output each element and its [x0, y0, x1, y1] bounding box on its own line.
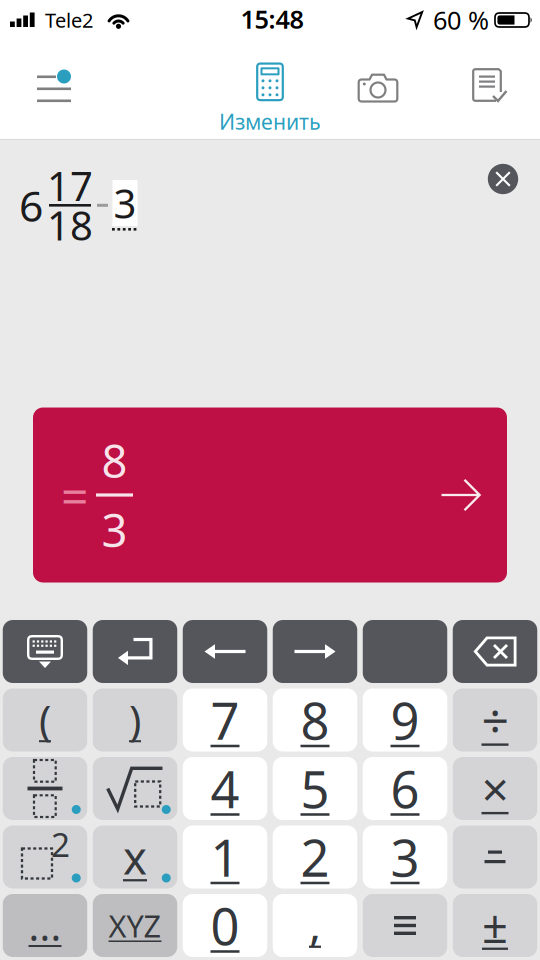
- staticText: ,: [309, 893, 321, 954]
- button[interactable]: Минус: [453, 825, 537, 888]
- button[interactable]: Скрыть клавиатуру: [3, 620, 87, 683]
- staticText: 6: [390, 755, 419, 822]
- button[interactable]: 1: [183, 825, 267, 888]
- button[interactable]: ×: [453, 757, 537, 820]
- button[interactable]: Закрыть: [488, 164, 518, 194]
- button[interactable]: Ввод: [93, 620, 177, 683]
- staticText: Tele2: [45, 7, 93, 33]
- staticText: ±: [482, 895, 508, 956]
- button[interactable]: Вправо: [273, 620, 357, 683]
- button[interactable]: Запятая: [273, 894, 357, 957]
- staticText: 2: [51, 822, 70, 866]
- staticText: 3: [390, 823, 419, 891]
- button[interactable]: 6: [363, 757, 447, 820]
- button[interactable]: 3: [363, 825, 447, 888]
- button[interactable]: Степень: [3, 825, 87, 888]
- button[interactable]: Камера: [343, 53, 413, 123]
- staticText: 18: [47, 198, 93, 252]
- button[interactable]: XYZ: [93, 894, 177, 957]
- staticText: 60 %: [433, 3, 489, 37]
- button[interactable]: =: [33, 407, 507, 582]
- button[interactable]: (: [3, 688, 87, 751]
- staticText: ...: [28, 899, 61, 952]
- button[interactable]: Пусто: [363, 620, 447, 683]
- staticText: 8: [101, 430, 127, 490]
- staticText: ×: [481, 757, 508, 820]
- button[interactable]: 7: [183, 688, 267, 751]
- button[interactable]: ...: [3, 894, 87, 957]
- staticText: 15:48: [240, 2, 303, 36]
- staticText: (: [39, 693, 51, 747]
- staticText: ): [129, 693, 141, 747]
- button[interactable]: 4: [183, 757, 267, 820]
- button[interactable]: Удалить: [453, 620, 537, 683]
- staticText: 7: [210, 686, 239, 754]
- staticText: Изменить: [219, 107, 321, 136]
- staticText: 17: [47, 159, 93, 212]
- staticText: 8: [300, 686, 329, 754]
- button[interactable]: Корень: [93, 757, 177, 820]
- button[interactable]: Задания: [455, 51, 525, 121]
- button[interactable]: Меню: [19, 53, 89, 123]
- staticText: 9: [390, 686, 419, 754]
- button[interactable]: Влево: [183, 620, 267, 683]
- staticText: 6: [19, 177, 43, 234]
- button[interactable]: 8: [273, 688, 357, 751]
- staticText: 0: [210, 892, 239, 959]
- button[interactable]: 0: [183, 894, 267, 957]
- button[interactable]: ±: [453, 894, 537, 957]
- button[interactable]: ): [93, 688, 177, 751]
- staticText: XYZ: [108, 905, 161, 946]
- button[interactable]: Равно: [363, 894, 447, 957]
- button[interactable]: Изменить: [219, 62, 321, 136]
- button[interactable]: 2: [273, 825, 357, 888]
- button[interactable]: x: [93, 825, 177, 888]
- button[interactable]: 9: [363, 688, 447, 751]
- staticText: 3: [113, 176, 136, 229]
- button[interactable]: 5: [273, 757, 357, 820]
- button[interactable]: ÷: [453, 688, 537, 751]
- staticText: x: [123, 827, 147, 887]
- staticText: ÷: [481, 688, 508, 752]
- staticText: 5: [300, 755, 329, 822]
- staticText: =: [61, 463, 88, 527]
- staticText: 3: [101, 500, 127, 560]
- staticText: 1: [210, 823, 239, 891]
- staticText: 2: [300, 823, 329, 891]
- staticText: 4: [210, 755, 239, 822]
- button[interactable]: Дробь: [3, 757, 87, 820]
